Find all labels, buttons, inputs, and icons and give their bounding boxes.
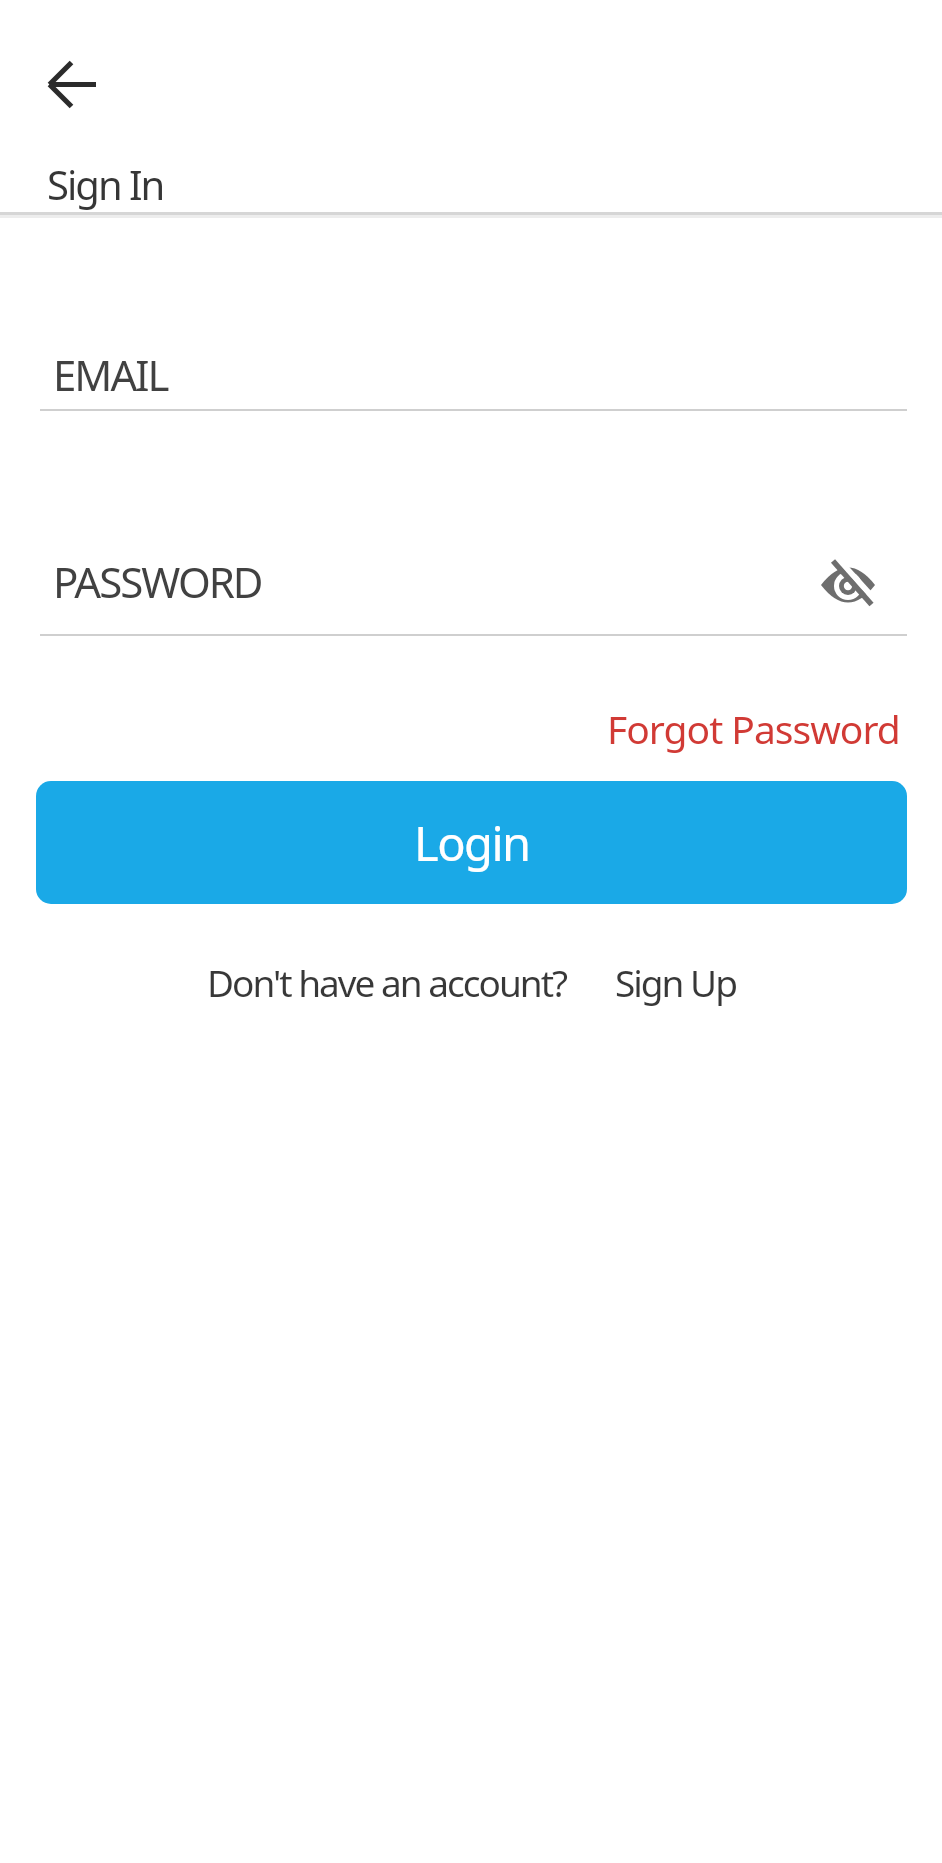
- button[interactable]: Login: [36, 781, 907, 904]
- button[interactable]: EMAIL: [40, 326, 907, 409]
- staticText: EMAIL: [53, 346, 168, 403]
- staticText: PASSWORD: [53, 553, 262, 610]
- button[interactable]: Sign Up: [615, 957, 736, 1007]
- staticText: Login: [414, 811, 530, 875]
- button[interactable]: Forgot Password: [607, 702, 900, 755]
- staticText: Forgot Password: [607, 702, 900, 755]
- button[interactable]: [812, 548, 884, 620]
- button[interactable]: [40, 52, 104, 116]
- staticText: Don't have an account?: [207, 957, 567, 1007]
- button[interactable]: PASSWORD: [40, 534, 907, 634]
- staticText: Sign Up: [615, 957, 736, 1007]
- staticText: Sign In: [47, 157, 164, 211]
